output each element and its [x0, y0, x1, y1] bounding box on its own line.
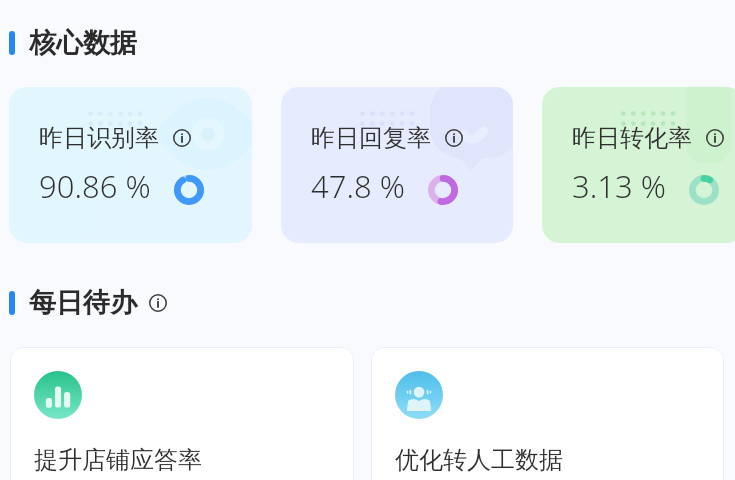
staticText: 昨日转化率 — [572, 123, 692, 153]
button[interactable]: 每日待办 — [9, 286, 167, 320]
button[interactable]: 优化转人工数据 — [371, 347, 724, 480]
staticText: 47.8 % — [311, 165, 405, 207]
button[interactable]: 提升店铺应答率 — [10, 347, 354, 480]
button[interactable]: More information — [445, 129, 463, 147]
button[interactable]: More information — [173, 129, 191, 147]
button[interactable]: More information — [706, 129, 724, 147]
button[interactable]: 昨日转化率 — [542, 87, 735, 243]
staticText: 90.86 % — [39, 165, 151, 207]
staticText: 昨日识别率 — [39, 123, 159, 153]
staticText: 每日待办 — [29, 286, 137, 320]
staticText: 昨日回复率 — [311, 123, 431, 153]
button[interactable]: 核心数据 — [9, 26, 137, 60]
staticText: 优化转人工数据 — [395, 445, 563, 475]
button[interactable]: 昨日回复率 — [281, 87, 513, 243]
staticText: 3.13 % — [572, 165, 666, 207]
staticText: 提升店铺应答率 — [34, 445, 202, 475]
button[interactable]: 昨日识别率 — [9, 87, 252, 243]
staticText: 核心数据 — [29, 26, 137, 60]
button[interactable]: More information — [149, 294, 167, 312]
